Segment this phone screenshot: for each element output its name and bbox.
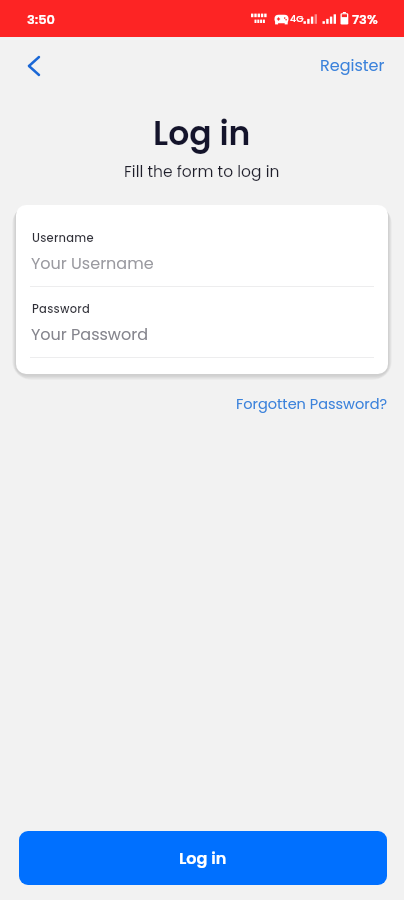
staticText: Log in	[179, 847, 227, 869]
button[interactable]: Register	[304, 46, 401, 84]
staticText: Username	[32, 230, 94, 246]
staticText: 73%	[352, 10, 378, 28]
staticText: Log in	[153, 110, 251, 156]
button[interactable]: Log in	[19, 831, 387, 885]
staticText: Fill the form to log in	[124, 161, 280, 183]
staticText: Your Username	[31, 252, 154, 274]
staticText: Forgotten Password?	[236, 394, 388, 414]
button[interactable]: Forgotten Password?	[220, 386, 404, 422]
staticText: Register	[320, 54, 385, 76]
staticText: Password	[32, 301, 90, 317]
button[interactable]: Back	[10, 42, 58, 90]
staticText: Your Password	[31, 323, 148, 345]
staticText: 4G	[290, 12, 304, 25]
staticText: 3:50	[27, 10, 55, 28]
